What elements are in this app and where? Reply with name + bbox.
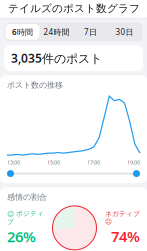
staticText: ☺ ポジティブ <box>7 209 44 226</box>
staticText: 26% <box>7 227 36 246</box>
staticText: テイルズのポスト数グラフ <box>8 2 140 15</box>
staticText: ポスト数の推移 <box>7 80 63 90</box>
button[interactable]: 24時間 <box>39 24 73 40</box>
staticText: 17:00 <box>87 159 100 166</box>
staticText: ネガティブ ☹ <box>105 210 140 226</box>
staticText: 3,035件のポスト <box>11 50 102 66</box>
staticText: 15:00 <box>47 159 60 166</box>
staticText: 13:00 <box>7 159 20 166</box>
button[interactable]: 6時間 <box>5 24 39 40</box>
staticText: 30日 <box>115 27 133 37</box>
staticText: 24時間 <box>43 27 69 37</box>
button[interactable]: 7日 <box>73 24 107 40</box>
staticText: 19:00 <box>127 159 140 166</box>
button[interactable]: 30日 <box>107 24 141 40</box>
staticText: 7日 <box>84 27 97 37</box>
staticText: 感情の割合 <box>7 192 47 202</box>
staticText: 6時間 <box>12 27 33 37</box>
staticText: 74% <box>111 226 140 246</box>
